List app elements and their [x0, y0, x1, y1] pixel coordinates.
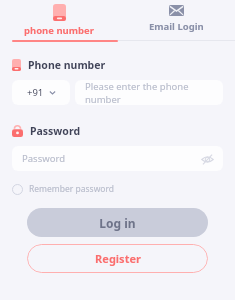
- button[interactable]: Remember password: [12, 183, 115, 195]
- staticText: Password: [30, 124, 81, 138]
- button[interactable]: Email Login: [117, 0, 235, 40]
- button[interactable]: phone number: [0, 0, 117, 40]
- staticText: Please enter the phone number: [85, 80, 223, 105]
- button[interactable]: Please enter the phone number: [75, 80, 223, 105]
- staticText: phone number: [24, 24, 94, 37]
- staticText: Log in: [99, 215, 136, 231]
- staticText: Email Login: [149, 20, 204, 33]
- button[interactable]: Log in: [27, 208, 208, 237]
- staticText: +91: [27, 86, 44, 99]
- staticText: Password: [22, 152, 65, 165]
- staticText: Register: [95, 251, 141, 266]
- staticText: Remember password: [29, 183, 115, 195]
- button[interactable]: Register: [27, 244, 208, 273]
- button[interactable]: Password: [12, 146, 223, 171]
- button[interactable]: Show password: [200, 152, 214, 166]
- button[interactable]: +91: [12, 80, 70, 105]
- staticText: Phone number: [28, 58, 106, 72]
